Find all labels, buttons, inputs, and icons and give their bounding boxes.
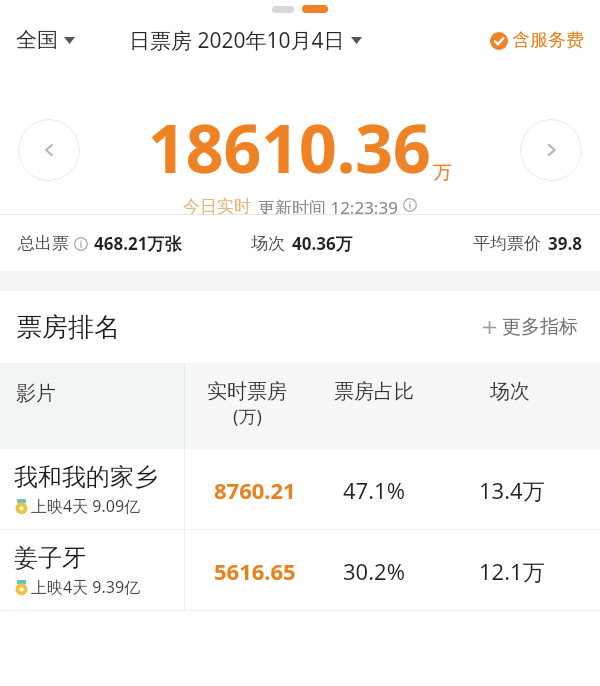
- staticText: 票房占比: [334, 379, 414, 404]
- staticText: 47.1%: [343, 475, 405, 505]
- staticText: 8760.21: [214, 475, 296, 505]
- staticText: 含服务费: [512, 29, 584, 52]
- staticText: 30.2%: [343, 556, 405, 586]
- staticText: 总出票: [18, 233, 69, 254]
- staticText: 万: [433, 161, 452, 185]
- staticText: 13.4万: [479, 475, 545, 505]
- staticText: 12.1万: [479, 556, 545, 586]
- staticText: 影片: [16, 381, 56, 406]
- staticText: 5616.65: [214, 556, 296, 586]
- staticText: 票房排名: [16, 311, 120, 344]
- staticText: 场次: [251, 233, 285, 254]
- staticText: 日票房 2020年10月4日: [129, 26, 345, 55]
- staticText: 姜子牙: [14, 543, 86, 573]
- staticText: 全国: [16, 27, 58, 53]
- staticText: 更多指标: [502, 315, 578, 339]
- staticText: 40.36万: [292, 232, 353, 255]
- staticText: 我和我的家乡: [14, 462, 158, 492]
- staticText: 场次: [490, 379, 530, 404]
- staticText: 18610.36: [148, 102, 431, 192]
- staticText: 468.21万张: [94, 232, 182, 255]
- button[interactable]: 我和我的家乡: [0, 449, 600, 530]
- button[interactable]: 姜子牙: [0, 530, 600, 611]
- button[interactable]: Next day: [520, 119, 582, 181]
- staticText: 39.8: [548, 232, 582, 255]
- button[interactable]: 更多指标: [477, 309, 584, 345]
- staticText: 平均票价: [473, 233, 541, 254]
- staticText: 上映4天 9.39亿: [31, 576, 141, 598]
- staticText: (万): [233, 404, 262, 429]
- button[interactable]: 日票房 2020年10月4日: [129, 22, 362, 59]
- staticText: 今日实时: [183, 196, 251, 214]
- staticText: 更新时间 12:23:39: [258, 196, 398, 214]
- button[interactable]: 全国: [16, 23, 75, 57]
- button[interactable]: Previous day: [18, 119, 80, 181]
- button[interactable]: 含服务费: [490, 29, 584, 52]
- staticText: 上映4天 9.09亿: [31, 495, 141, 517]
- staticText: 实时票房: [207, 379, 287, 404]
